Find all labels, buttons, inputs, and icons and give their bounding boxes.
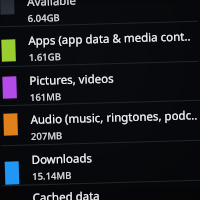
staticText: Pictures, videos bbox=[29, 71, 115, 89]
staticText: 15.14MB bbox=[32, 169, 72, 182]
staticText: Downloads bbox=[31, 150, 93, 168]
staticText: 161MB bbox=[30, 90, 62, 103]
button[interactable]: Audio (music, ringtones, podc.. bbox=[0, 99, 200, 143]
staticText: 207MB bbox=[31, 129, 63, 142]
button[interactable]: Apps (app data & media cont.. bbox=[0, 20, 199, 64]
staticText: Cached data bbox=[32, 188, 101, 200]
staticText: Available bbox=[27, 0, 76, 10]
button[interactable]: Downloads bbox=[1, 139, 200, 183]
button[interactable]: Cached data bbox=[2, 177, 200, 200]
staticText: 1.61GB bbox=[29, 50, 62, 63]
staticText: Audio (music, ringtones, podc.. bbox=[30, 107, 198, 128]
staticText: Apps (app data & media cont.. bbox=[28, 28, 191, 49]
button[interactable]: Available bbox=[0, 0, 198, 25]
staticText: 6.04GB bbox=[27, 11, 61, 24]
button[interactable]: Pictures, videos bbox=[0, 60, 200, 104]
